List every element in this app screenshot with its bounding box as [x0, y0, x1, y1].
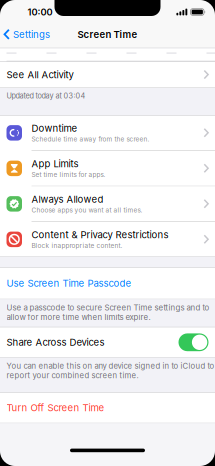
button[interactable]: App Limits: [0, 151, 215, 186]
staticText: Updated today at 03:04: [6, 91, 85, 100]
button[interactable]: Settings: [0, 29, 50, 40]
staticText: Block inappropriate content.: [31, 242, 122, 250]
staticText: Share Across Devices: [6, 336, 104, 348]
button[interactable]: See All Activity: [0, 61, 215, 88]
staticText: allow for more time when limits expire.: [6, 312, 150, 322]
staticText: Turn Off Screen Time: [6, 402, 104, 414]
staticText: report your combined screen time.: [6, 371, 138, 380]
staticText: 10:00: [27, 6, 52, 18]
staticText: Choose apps you want at all times.: [31, 206, 142, 214]
button[interactable]: Share Across Devices: [0, 327, 215, 358]
staticText: Schedule time away from the screen.: [31, 135, 149, 143]
staticText: Always Allowed: [31, 193, 103, 205]
button[interactable]: Always Allowed: [0, 186, 215, 221]
button[interactable]: Downtime: [0, 115, 215, 150]
staticText: Screen Time: [77, 29, 137, 40]
staticText: Downtime: [31, 122, 77, 134]
staticText: Settings: [13, 29, 50, 40]
staticText: See All Activity: [6, 69, 73, 80]
staticText: You can enable this on any device signed…: [6, 361, 214, 371]
button[interactable]: Content & Privacy Restrictions: [0, 222, 215, 257]
button[interactable]: Turn Off Screen Time: [0, 392, 215, 423]
staticText: Content & Privacy Restrictions: [31, 229, 168, 241]
button[interactable]: Use Screen Time Passcode: [0, 267, 215, 299]
staticText: Use a passcode to secure Screen Time set…: [6, 303, 209, 312]
staticText: Use Screen Time Passcode: [6, 277, 131, 289]
staticText: Set time limits for apps.: [31, 171, 105, 179]
staticText: App Limits: [31, 158, 78, 170]
